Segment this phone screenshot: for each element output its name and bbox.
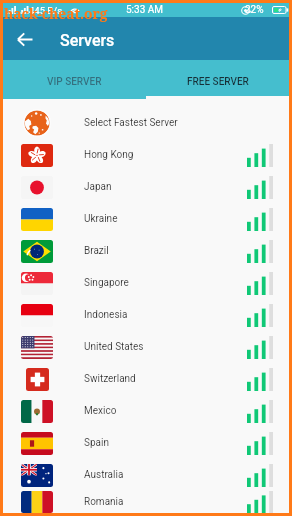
button[interactable]: Hong Kong: [3, 139, 289, 171]
staticText: Ukraine: [84, 213, 118, 225]
staticText: Australia: [84, 469, 124, 481]
button[interactable]: Select Fastest Server: [3, 107, 289, 139]
staticText: Switzerland: [84, 373, 136, 385]
staticText: Singapore: [84, 277, 129, 289]
button[interactable]: Romania: [3, 491, 289, 513]
button[interactable]: Australia: [3, 459, 289, 491]
staticText: FREE SERVER: [187, 76, 249, 88]
button[interactable]: Indonesia: [3, 299, 289, 331]
staticText: Spain: [84, 437, 109, 449]
staticText: Brazil: [84, 245, 109, 257]
button[interactable]: VIP SERVER: [3, 60, 146, 96]
staticText: 445 B/s: [29, 5, 63, 16]
button[interactable]: FREE SERVER: [146, 60, 289, 96]
staticText: Romania: [84, 496, 124, 508]
staticText: 5:33 AM: [126, 4, 164, 16]
button[interactable]: Switzerland: [3, 363, 289, 395]
button[interactable]: Ukraine: [3, 203, 289, 235]
staticText: 22%: [245, 4, 264, 16]
button[interactable]: Spain: [3, 427, 289, 459]
button[interactable]: United States: [3, 331, 289, 363]
button[interactable]: Brazil: [3, 235, 289, 267]
staticText: Japan: [84, 181, 112, 193]
button[interactable]: Back: [7, 21, 43, 57]
staticText: VIP SERVER: [47, 76, 102, 88]
button[interactable]: Japan: [3, 171, 289, 203]
staticText: Servers: [60, 31, 115, 50]
staticText: Indonesia: [84, 309, 128, 321]
staticText: Hong Kong: [84, 149, 134, 161]
staticText: Select Fastest Server: [84, 117, 178, 129]
staticText: hack-cheat.org: [4, 4, 108, 23]
button[interactable]: Mexico: [3, 395, 289, 427]
staticText: United States: [84, 341, 144, 353]
staticText: Mexico: [84, 405, 117, 417]
button[interactable]: Singapore: [3, 267, 289, 299]
